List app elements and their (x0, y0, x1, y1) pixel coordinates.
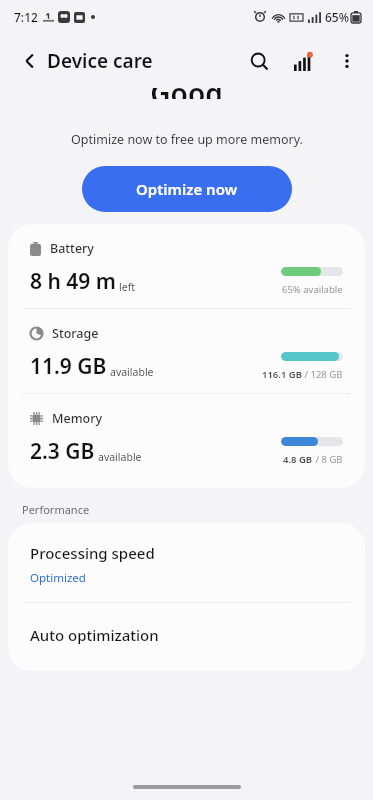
staticText: 65% available (282, 283, 343, 296)
staticText: 116.1 GB (262, 368, 302, 381)
staticText: / 128 GB (302, 368, 343, 381)
button[interactable]: Battery (8, 224, 365, 308)
staticText: Processing speed (30, 543, 155, 563)
button[interactable]: Back (8, 39, 52, 83)
staticText: Optimize now to free up more memory. (71, 131, 303, 148)
staticText: 65% (325, 9, 349, 25)
button[interactable]: More options (325, 39, 369, 83)
staticText: available (110, 365, 154, 379)
button[interactable]: Statistics (281, 39, 325, 83)
staticText: 4.8 GB (283, 453, 313, 466)
staticText: Battery (50, 240, 94, 257)
staticText: Device care (47, 48, 153, 74)
staticText: left (119, 280, 136, 294)
staticText: 8 h 49 m (30, 267, 116, 296)
button[interactable]: Auto optimization (8, 603, 365, 671)
button[interactable]: Processing speed (8, 523, 365, 602)
staticText: 2.3 GB (30, 437, 95, 466)
staticText: Good (150, 88, 223, 99)
staticText: Storage (52, 325, 99, 342)
button[interactable]: Memory (8, 394, 365, 478)
button[interactable]: Optimize now (82, 166, 292, 212)
staticText: / 8 GB (313, 453, 343, 466)
staticText: available (98, 450, 142, 464)
staticText: Memory (52, 410, 103, 427)
staticText: 7:12 (14, 9, 38, 25)
staticText: Auto optimization (30, 625, 159, 645)
staticText: Optimize now (136, 179, 238, 199)
staticText: 11.9 GB (30, 352, 107, 381)
button[interactable]: Storage (8, 309, 365, 393)
staticText: Performance (22, 502, 90, 517)
staticText: Optimized (30, 570, 86, 586)
button[interactable]: Search (237, 39, 281, 83)
